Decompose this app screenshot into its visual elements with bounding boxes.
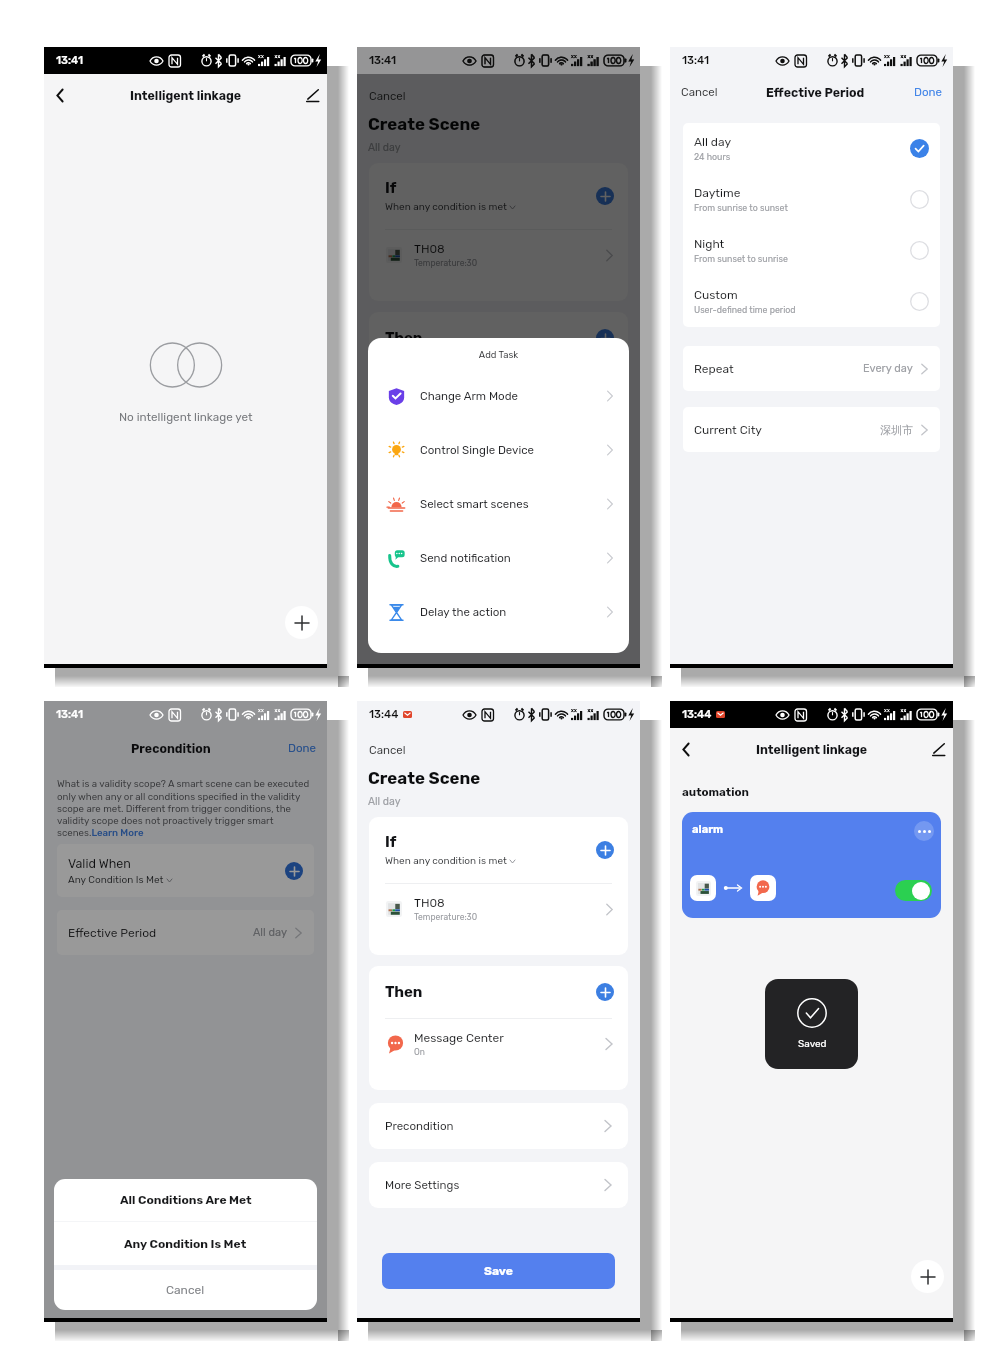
button[interactable]: Cancel <box>369 743 406 757</box>
staticText: Add Task <box>368 349 629 360</box>
button[interactable]: Done <box>288 741 316 755</box>
staticText: Then <box>385 983 423 1001</box>
staticText: Intelligent linkage <box>756 742 868 757</box>
button[interactable]: Message Center <box>369 1019 628 1069</box>
staticText: All Conditions Are Met <box>120 1193 252 1207</box>
staticText: Create Scene <box>368 114 481 134</box>
staticText: On <box>414 1047 425 1057</box>
button[interactable]: TH08 <box>369 884 628 934</box>
button[interactable]: Current City <box>683 407 940 452</box>
button[interactable]: Message Center <box>369 365 628 415</box>
staticText: Repeat <box>694 362 734 376</box>
staticText: 13:44 <box>682 708 712 721</box>
staticText: automation <box>682 785 749 799</box>
button[interactable]: Edit <box>925 737 950 762</box>
button[interactable]: More options <box>914 821 934 841</box>
staticText: From sunrise to sunset <box>694 203 788 213</box>
staticText: Change Arm Mode <box>420 389 518 403</box>
button[interactable]: Custom <box>683 276 940 327</box>
button[interactable]: Add <box>285 606 318 639</box>
button[interactable]: All day <box>683 123 940 174</box>
staticText: Message Center <box>414 1031 504 1045</box>
staticText: Precondition <box>385 1119 454 1133</box>
button[interactable]: Edit <box>299 83 324 108</box>
staticText: More Settings <box>385 1178 460 1192</box>
staticText: If <box>385 179 397 197</box>
button[interactable]: Add <box>911 1260 944 1293</box>
staticText: 13:41 <box>682 54 710 67</box>
staticText: Valid When <box>68 856 131 871</box>
button[interactable]: Precondition <box>369 1103 628 1149</box>
staticText: Control Single Device <box>420 443 535 457</box>
button[interactable]: Any Condition Is Met <box>54 1222 317 1265</box>
button[interactable]: Valid When <box>57 844 314 897</box>
staticText: Create Scene <box>368 768 481 788</box>
button[interactable]: Send notification <box>368 531 629 585</box>
staticText: Any Condition Is Met <box>68 874 164 886</box>
button[interactable]: TH08 <box>369 230 628 280</box>
staticText: All day <box>253 926 287 939</box>
staticText: 13:41 <box>56 708 84 721</box>
staticText: Temperature:30 <box>414 258 478 268</box>
button[interactable]: All Conditions Are Met <box>54 1179 317 1221</box>
button[interactable]: Toggle automation <box>895 880 932 901</box>
staticText: Effective Period <box>766 85 865 100</box>
button[interactable]: Cancel <box>369 89 406 103</box>
button[interactable]: Save <box>382 1253 615 1289</box>
staticText: All day <box>368 795 401 807</box>
staticText: 13:44 <box>369 708 399 721</box>
button[interactable]: Repeat <box>683 346 940 391</box>
staticText: When any condition is met <box>385 855 507 867</box>
staticText: Saved <box>798 1038 827 1050</box>
staticText: Select smart scenes <box>420 497 529 511</box>
staticText: Current City <box>694 423 762 437</box>
staticText: TH08 <box>414 242 445 256</box>
staticText: When any condition is met <box>385 201 507 213</box>
staticText: 深圳市 <box>880 423 913 437</box>
staticText: On <box>414 393 425 403</box>
staticText: All day <box>368 141 401 153</box>
staticText: If <box>385 833 397 851</box>
staticText: All day <box>694 135 732 149</box>
button[interactable]: Change Arm Mode <box>368 369 629 423</box>
staticText: User-defined time period <box>694 305 796 315</box>
staticText: Send notification <box>420 551 511 565</box>
staticText: Every day <box>863 362 913 375</box>
staticText: 24 hours <box>694 152 731 162</box>
staticText: Temperature:30 <box>414 912 478 922</box>
staticText: Then <box>385 329 423 347</box>
button[interactable]: Cancel <box>54 1270 317 1310</box>
button[interactable]: Daytime <box>683 174 940 225</box>
button[interactable]: More Settings <box>369 1162 628 1208</box>
staticText: 13:41 <box>369 54 397 67</box>
button[interactable]: alarm <box>682 812 941 918</box>
button[interactable]: Back <box>47 83 72 108</box>
staticText: Delay the action <box>420 605 507 619</box>
staticText: Cancel <box>166 1283 205 1297</box>
staticText: TH08 <box>414 896 445 910</box>
staticText: Save <box>484 1264 513 1278</box>
staticText: Any Condition Is Met <box>124 1237 247 1251</box>
button[interactable]: Control Single Device <box>368 423 629 477</box>
staticText: 13:41 <box>56 54 84 67</box>
staticText: Precondition <box>131 741 211 756</box>
button[interactable]: Night <box>683 225 940 276</box>
staticText: No intelligent linkage yet <box>119 410 253 424</box>
staticText: Intelligent linkage <box>130 88 242 103</box>
staticText: alarm <box>692 823 724 836</box>
button[interactable]: Delay the action <box>368 585 629 639</box>
button[interactable]: Select smart scenes <box>368 477 629 531</box>
button[interactable]: Effective Period <box>57 910 314 955</box>
staticText: From sunset to sunrise <box>694 254 788 264</box>
staticText: 13:41 <box>369 54 397 67</box>
button[interactable]: Done <box>914 85 942 99</box>
staticText: Daytime <box>694 186 741 200</box>
staticText: Custom <box>694 288 738 302</box>
staticText: Effective Period <box>68 926 157 940</box>
staticText: What is a validity scope? A smart scene … <box>57 778 310 838</box>
staticText: Night <box>694 237 725 251</box>
button[interactable]: Back <box>673 737 698 762</box>
button[interactable]: Cancel <box>681 85 718 99</box>
